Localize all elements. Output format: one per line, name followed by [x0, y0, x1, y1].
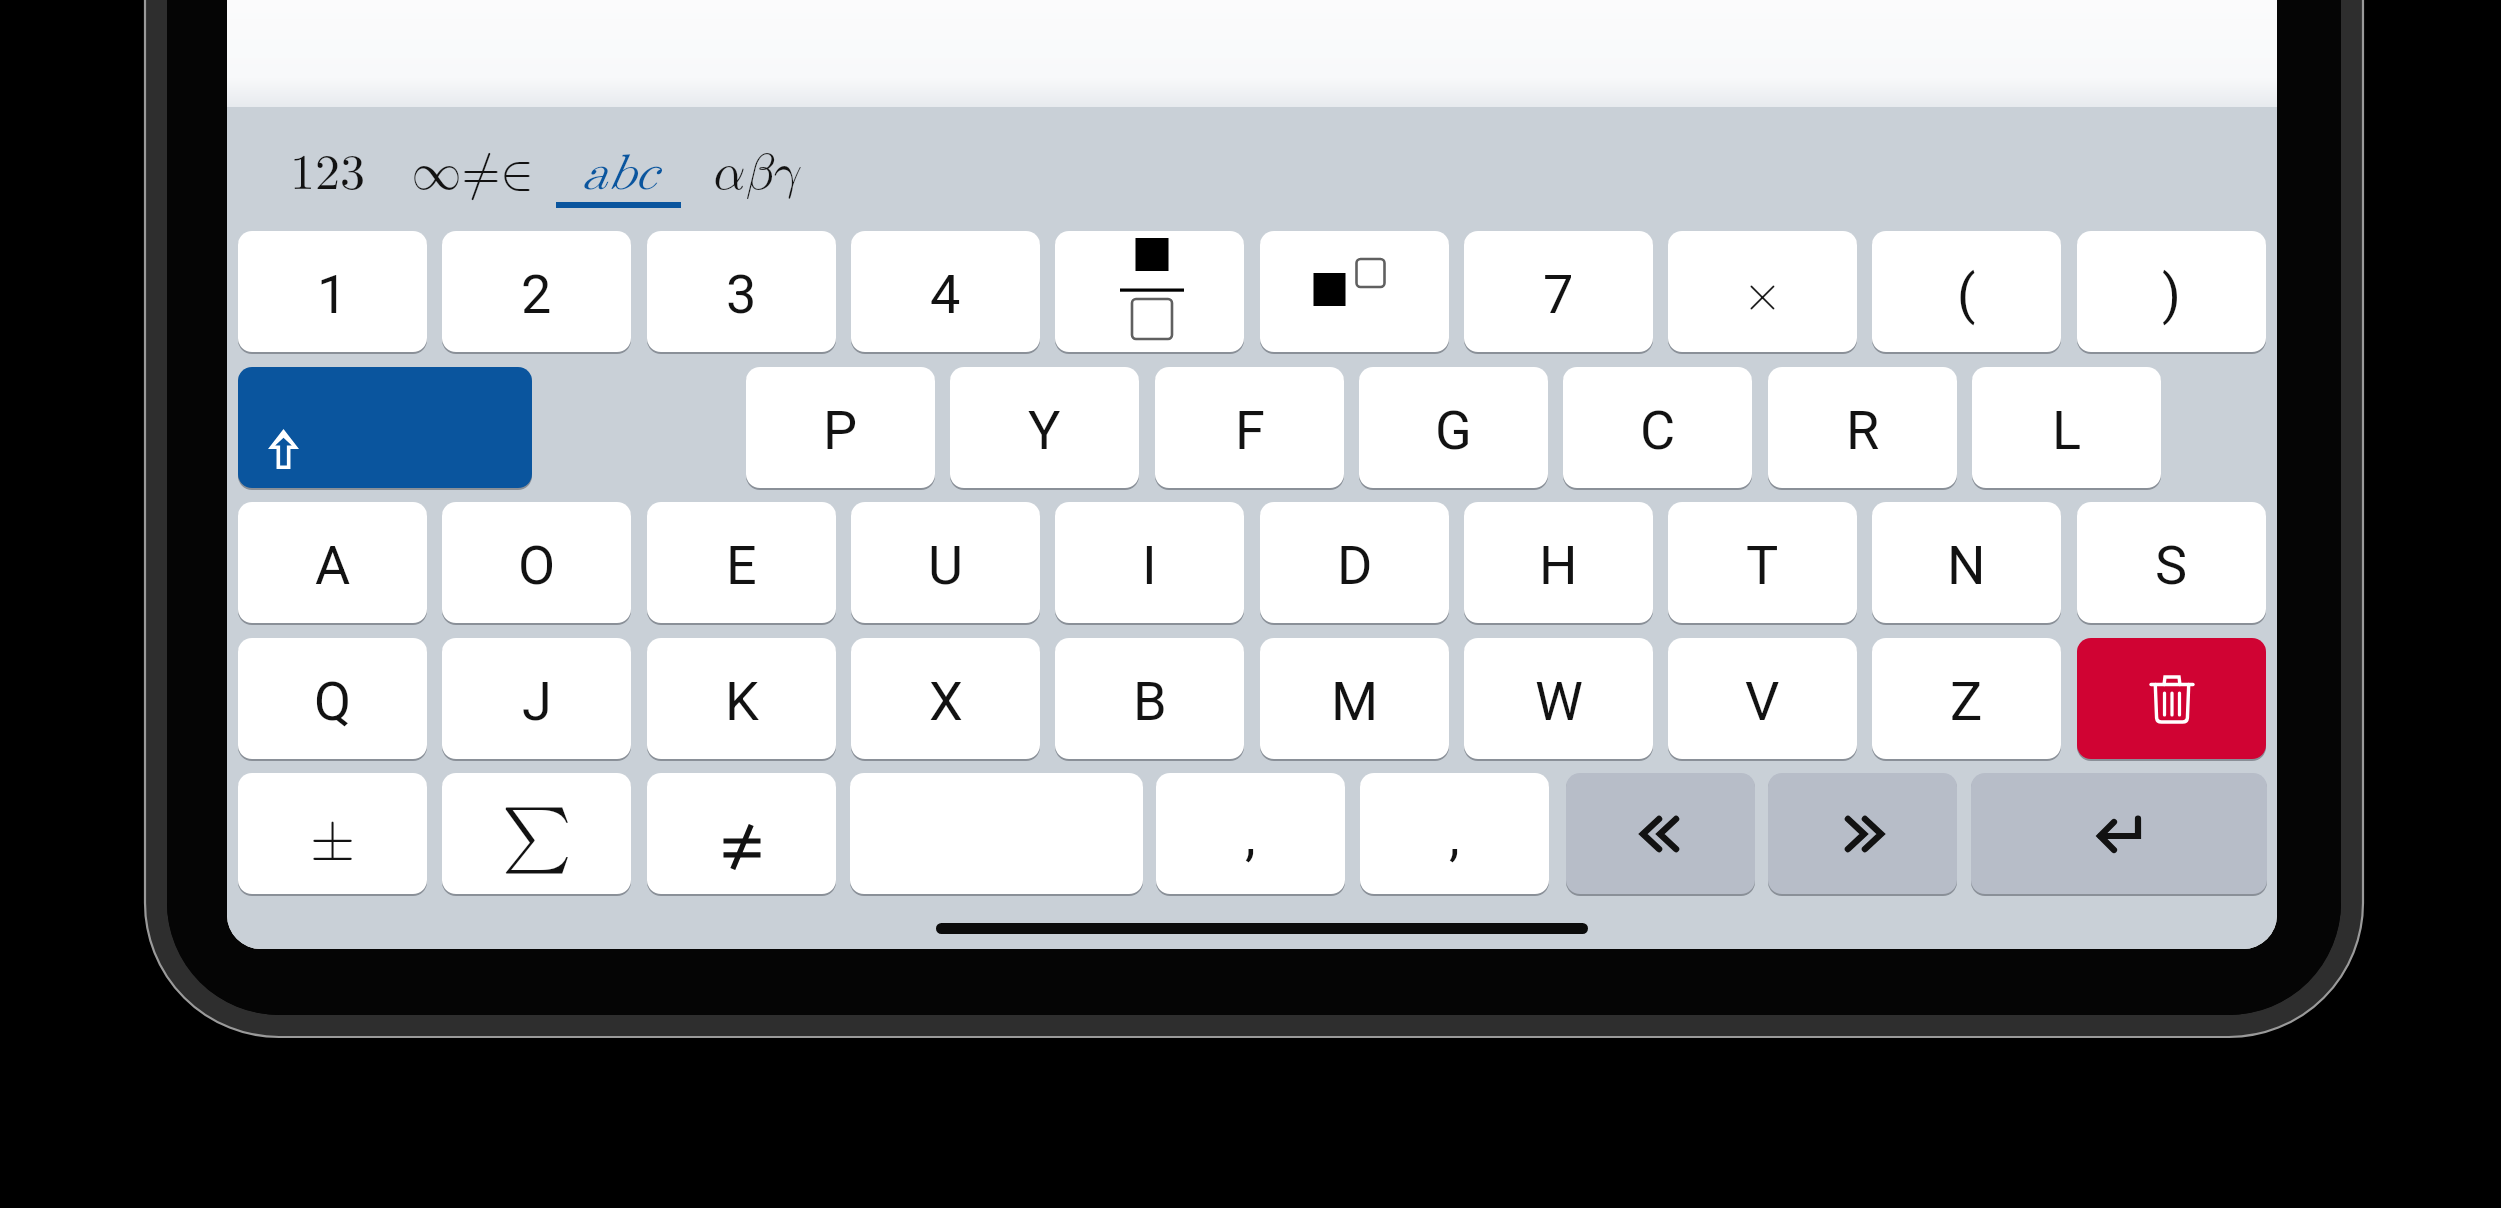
staticText: N	[1947, 534, 1986, 597]
staticText: K	[725, 670, 759, 733]
staticText: 3	[726, 263, 757, 326]
staticText: F	[1235, 399, 1265, 462]
button[interactable]: F	[1155, 367, 1344, 488]
button[interactable]: 𝛼𝛽𝛾	[682, 116, 830, 216]
button[interactable]: E	[647, 502, 836, 623]
button[interactable]: O	[442, 502, 631, 623]
staticText: 4	[930, 263, 961, 326]
staticText: P	[823, 399, 858, 462]
button[interactable]: ×	[1668, 231, 1857, 352]
staticText: ,	[1245, 805, 1256, 868]
button[interactable]: Not equal	[647, 773, 836, 894]
button[interactable]: 7	[1464, 231, 1653, 352]
button[interactable]: J	[442, 638, 631, 759]
staticText: ∑	[502, 804, 572, 870]
button[interactable]: W	[1464, 638, 1653, 759]
staticText: Y	[1028, 399, 1061, 462]
button[interactable]: ,	[1156, 773, 1345, 894]
button[interactable]: 1	[238, 231, 427, 352]
button[interactable]: ,	[1360, 773, 1549, 894]
button[interactable]: ∞≠∈	[398, 116, 546, 216]
staticText: Z	[1950, 670, 1983, 733]
button[interactable]: Q	[238, 638, 427, 759]
staticText: L	[2052, 399, 2082, 462]
button[interactable]: C	[1563, 367, 1752, 488]
button[interactable]: A	[238, 502, 427, 623]
button[interactable]: 4	[851, 231, 1040, 352]
staticText: J	[522, 670, 552, 733]
staticText: D	[1337, 534, 1373, 597]
button[interactable]: 2	[442, 231, 631, 352]
button[interactable]: Move cursor right	[1768, 773, 1957, 894]
staticText: B	[1133, 670, 1167, 733]
staticText: 𝛼𝛽𝛾	[713, 149, 800, 199]
staticText: abc	[581, 149, 656, 199]
button[interactable]: Space	[850, 773, 1143, 894]
button[interactable]: Move cursor left	[1566, 773, 1755, 894]
button[interactable]: K	[647, 638, 836, 759]
staticText: I	[1142, 534, 1157, 597]
button[interactable]: ∑	[442, 773, 631, 894]
button[interactable]: Shift	[238, 367, 532, 488]
button[interactable]: T	[1668, 502, 1857, 623]
staticText: ,	[1449, 805, 1460, 868]
staticText: T	[1746, 534, 1779, 597]
button[interactable]: 3	[647, 231, 836, 352]
staticText: Q	[314, 670, 352, 733]
button[interactable]: V	[1668, 638, 1857, 759]
staticText: ±	[310, 808, 356, 866]
button[interactable]: Y	[950, 367, 1139, 488]
staticText: A	[315, 534, 351, 597]
staticText: G	[1435, 399, 1472, 462]
staticText: S	[2155, 534, 2188, 597]
button[interactable]: Insert fraction	[1055, 231, 1244, 352]
button[interactable]: P	[746, 367, 935, 488]
staticText: 7	[1543, 263, 1574, 326]
button[interactable]: D	[1260, 502, 1449, 623]
staticText: ×	[1743, 270, 1782, 320]
staticText: V	[1745, 670, 1780, 733]
staticText: (	[1957, 263, 1976, 326]
staticText: M	[1331, 670, 1379, 733]
button[interactable]: N	[1872, 502, 2061, 623]
button[interactable]: abc	[544, 116, 692, 216]
button[interactable]: M	[1260, 638, 1449, 759]
staticText: U	[928, 534, 964, 597]
staticText: R	[1846, 399, 1880, 462]
staticText: X	[929, 670, 963, 733]
button[interactable]: B	[1055, 638, 1244, 759]
staticText: ∞≠∈	[411, 149, 534, 199]
button[interactable]: H	[1464, 502, 1653, 623]
button[interactable]: ±	[238, 773, 427, 894]
button[interactable]: Z	[1872, 638, 2061, 759]
button[interactable]: U	[851, 502, 1040, 623]
staticText: 2	[521, 263, 552, 326]
staticText: C	[1640, 399, 1676, 462]
button[interactable]: I	[1055, 502, 1244, 623]
staticText: O	[518, 534, 556, 597]
staticText: 1	[317, 263, 348, 326]
button[interactable]: G	[1359, 367, 1548, 488]
button[interactable]: R	[1768, 367, 1957, 488]
button[interactable]: 123	[253, 116, 401, 216]
button[interactable]: )	[2077, 231, 2266, 352]
staticText: E	[726, 534, 757, 597]
button[interactable]: Delete	[2077, 638, 2266, 759]
button[interactable]: Insert exponent	[1260, 231, 1449, 352]
button[interactable]: L	[1972, 367, 2161, 488]
staticText: 123	[290, 149, 365, 199]
staticText: H	[1539, 534, 1578, 597]
button[interactable]: S	[2077, 502, 2266, 623]
button[interactable]: (	[1872, 231, 2061, 352]
staticText: W	[1535, 670, 1583, 733]
button[interactable]: X	[851, 638, 1040, 759]
staticText: )	[2162, 263, 2181, 326]
button[interactable]: Enter	[1971, 773, 2267, 894]
